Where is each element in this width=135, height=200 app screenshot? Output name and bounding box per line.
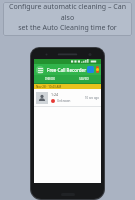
staticText: Unknown <box>57 99 71 103</box>
button[interactable]: Configure automatic cleaning – Can also … <box>3 2 132 36</box>
button[interactable]: INBOX <box>34 75 67 83</box>
staticText: SAVED <box>79 77 89 81</box>
staticText: INBOX <box>45 77 56 81</box>
button[interactable]: 1:24 <box>34 89 101 106</box>
staticText: Free Call Recorder <box>47 67 87 73</box>
staticText: Configure automatic cleaning – Can also … <box>3 2 132 36</box>
button[interactable]: Record <box>96 66 99 73</box>
button[interactable]: Menu <box>36 66 44 74</box>
staticText: Nov 28 · 10:43 AM <box>36 85 62 89</box>
staticText: 10 sec ago <box>85 96 99 100</box>
button[interactable]: Info <box>87 66 94 73</box>
staticText: 1:24 <box>51 92 59 97</box>
button[interactable]: SAVED <box>67 75 101 83</box>
